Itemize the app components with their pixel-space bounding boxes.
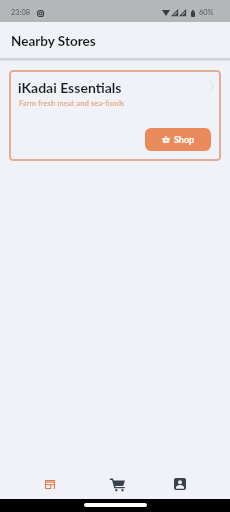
staticText: Shop <box>174 134 195 145</box>
button[interactable]: Cart <box>82 469 147 499</box>
button[interactable]: iKadai Essentials <box>9 70 221 161</box>
button[interactable]: Shop <box>145 128 211 151</box>
staticText: Farm fresh meat and sea-foods <box>19 98 125 107</box>
staticText: iKadai Essentials <box>18 79 122 96</box>
staticText: 60% <box>199 8 214 17</box>
staticText: Nearby Stores <box>11 33 96 49</box>
button[interactable]: Stores <box>17 469 82 499</box>
staticText: 23:08 <box>11 8 30 17</box>
button[interactable]: Account <box>147 469 212 499</box>
